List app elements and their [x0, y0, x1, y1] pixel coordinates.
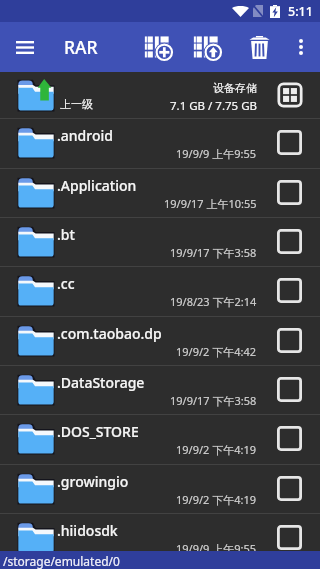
button[interactable]: Select: [272, 225, 306, 257]
staticText: 上一级: [60, 97, 93, 111]
button[interactable]: Select: [272, 324, 306, 356]
staticText: 19/8/23 下午2:14: [170, 294, 257, 309]
staticText: .DOS_STORE: [57, 422, 139, 441]
button[interactable]: .com.taobao.dp: [0, 316, 320, 364]
button[interactable]: Extract: [185, 26, 229, 70]
staticText: .cc: [57, 274, 75, 293]
button[interactable]: Add to archive: [136, 26, 180, 70]
button[interactable]: Select: [272, 176, 306, 208]
staticText: 19/9/17 下午3:58: [170, 245, 257, 260]
staticText: .bt: [57, 225, 75, 244]
button[interactable]: Select: [272, 126, 306, 158]
staticText: 19/9/2 下午4:42: [176, 344, 257, 359]
button[interactable]: Delete: [238, 26, 280, 68]
button[interactable]: Select: [272, 521, 306, 553]
button[interactable]: .DOS_STORE: [0, 414, 320, 462]
button[interactable]: .hiidosdk: [0, 513, 320, 561]
button[interactable]: Select: [272, 274, 306, 306]
staticText: .Application: [57, 176, 137, 195]
button[interactable]: Menu: [3, 25, 47, 69]
button[interactable]: .bt: [0, 217, 320, 265]
staticText: .hiidosdk: [57, 521, 118, 540]
button[interactable]: Select: [272, 472, 306, 504]
button[interactable]: Grid view: [272, 77, 308, 113]
staticText: 19/9/2 下午4:19: [176, 492, 257, 507]
staticText: .com.taobao.dp: [57, 324, 162, 343]
button[interactable]: 上一级: [0, 72, 320, 118]
staticText: .growingio: [57, 472, 129, 491]
staticText: /storage/emulated/0: [3, 553, 120, 569]
button[interactable]: Select: [272, 373, 306, 405]
staticText: RAR: [64, 35, 98, 59]
staticText: 19/9/9 上午9:55: [176, 146, 257, 161]
staticText: 19/9/2 下午4:19: [176, 442, 257, 457]
button[interactable]: .android: [0, 118, 320, 166]
staticText: 19/9/9 上午9:55: [176, 541, 257, 556]
staticText: 19/9/17 下午3:58: [170, 393, 257, 408]
button[interactable]: .Application: [0, 168, 320, 216]
button[interactable]: More options: [283, 29, 318, 64]
button[interactable]: .DataStorage: [0, 365, 320, 413]
button[interactable]: .growingio: [0, 464, 320, 512]
staticText: 设备存储: [213, 81, 257, 95]
button[interactable]: .cc: [0, 266, 320, 314]
staticText: 19/9/17 上午10:55: [164, 196, 257, 211]
button[interactable]: Select: [272, 422, 306, 454]
staticText: .android: [57, 126, 113, 145]
staticText: .DataStorage: [57, 373, 145, 392]
staticText: 7.1 GB / 7.75 GB: [170, 98, 257, 114]
staticText: 5:11: [288, 3, 313, 20]
